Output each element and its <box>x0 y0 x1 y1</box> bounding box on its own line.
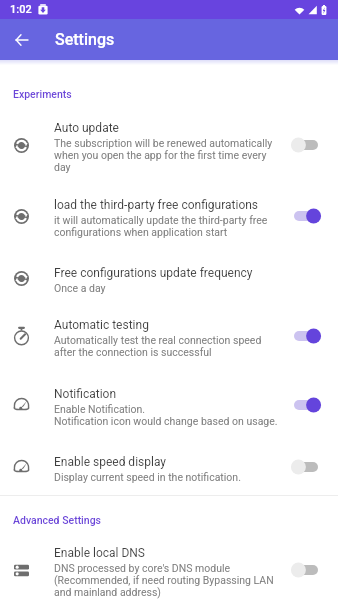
staticText: Notification <box>54 387 117 401</box>
staticText: when you open the app for the first time… <box>54 149 267 161</box>
staticText: The subscription will be renewed automat… <box>54 137 273 149</box>
staticText: Advanced Settings <box>13 514 101 526</box>
staticText: Display current speed in the notificatio… <box>54 471 241 483</box>
staticText: Settings <box>55 30 115 49</box>
staticText: (Recommended, if need routing Bypassing … <box>54 574 274 586</box>
staticText: Automatically test the real connection s… <box>54 334 262 346</box>
staticText: after the connection is successful <box>54 346 212 358</box>
button[interactable]: Switch off <box>290 560 322 580</box>
staticText: and mainland address) <box>54 586 161 598</box>
staticText: 1:02 <box>10 3 32 16</box>
button[interactable]: Switch off <box>290 135 322 155</box>
staticText: Enable local DNS <box>54 546 145 560</box>
staticText: Enable Notification. <box>54 403 146 415</box>
staticText: Enable speed display <box>54 455 167 469</box>
staticText: Once a day <box>54 282 106 294</box>
staticText: configurations when application start <box>54 226 228 238</box>
staticText: Auto update <box>54 121 119 135</box>
button[interactable]: Switch off <box>290 457 322 477</box>
button[interactable]: Automatic testing <box>0 318 338 358</box>
staticText: DNS processed by core's DNS module <box>54 562 231 574</box>
staticText: Notification icon would change based on … <box>54 415 278 427</box>
button[interactable]: Free configurations update frequency <box>0 266 338 294</box>
button[interactable]: load the third-party free configurations <box>0 198 338 238</box>
button[interactable]: Enable speed display <box>0 455 338 483</box>
staticText: Automatic testing <box>54 318 149 332</box>
button[interactable]: Auto update <box>0 121 338 173</box>
staticText: Experiments <box>13 88 72 100</box>
staticText: Free configurations update frequency <box>54 266 253 280</box>
button[interactable]: Switch on <box>290 395 322 415</box>
staticText: day <box>54 161 71 173</box>
button[interactable]: Switch on <box>290 206 322 226</box>
button[interactable]: Switch on <box>290 326 322 346</box>
staticText: it will automatically update the third-p… <box>54 214 268 226</box>
button[interactable]: Enable local DNS <box>0 546 338 598</box>
button[interactable]: Back <box>5 23 38 56</box>
button[interactable]: Notification <box>0 387 338 427</box>
staticText: load the third-party free configurations <box>54 198 259 212</box>
